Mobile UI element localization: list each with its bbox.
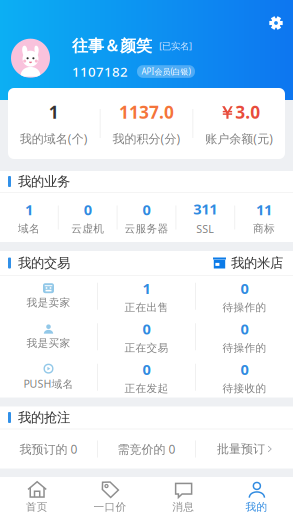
staticText: 账户余额(元) xyxy=(205,131,273,146)
staticText: 云服务器 xyxy=(124,222,168,235)
staticText: 域名 xyxy=(18,222,40,235)
button[interactable]: 我是买家 xyxy=(0,324,97,350)
button[interactable]: 0 xyxy=(98,359,195,395)
staticText: 0 xyxy=(142,200,150,219)
staticText: 1 xyxy=(49,100,59,123)
button[interactable]: 一口价 xyxy=(73,477,146,517)
staticText: 我的米店 xyxy=(231,255,283,271)
button[interactable]: 11 xyxy=(235,200,293,235)
staticText: 待操作的 xyxy=(222,341,266,354)
button[interactable]: 0 xyxy=(196,278,293,314)
button[interactable]: 我的 xyxy=(220,477,293,517)
button[interactable]: 0 xyxy=(59,200,117,235)
button[interactable]: 0 xyxy=(118,200,175,235)
staticText: API会员(白银) xyxy=(141,66,190,77)
staticText: 正在发起 xyxy=(124,382,168,395)
button[interactable]: 0 xyxy=(196,319,293,355)
button[interactable]: 我是卖家 xyxy=(0,283,97,309)
button[interactable]: 首页 xyxy=(0,477,73,517)
button[interactable]: Settings xyxy=(262,9,290,37)
staticText: 需竞价的 0 xyxy=(117,441,175,457)
staticText: 往事＆颜笑 xyxy=(72,36,152,56)
staticText: 0 xyxy=(142,319,150,338)
staticText: 正在出售 xyxy=(124,301,168,314)
button[interactable]: 1 xyxy=(98,278,195,314)
staticText: 我的业务 xyxy=(18,173,70,190)
staticText: 一口价 xyxy=(93,500,126,513)
button[interactable]: 批量预订 xyxy=(196,442,293,456)
staticText: 1 xyxy=(25,200,33,219)
staticText: 待接收的 xyxy=(222,382,266,395)
button[interactable]: 0 xyxy=(98,319,195,355)
staticText: 0 xyxy=(84,200,92,219)
button[interactable]: 1 xyxy=(0,200,58,235)
button[interactable]: 1137.0 xyxy=(101,100,192,146)
staticText: 1137.0 xyxy=(119,100,174,123)
button[interactable]: PUSH域名 xyxy=(0,364,97,391)
staticText: 我是卖家 xyxy=(26,296,70,309)
staticText: 商标 xyxy=(253,222,275,235)
staticText: 1107182 xyxy=(72,63,128,80)
button[interactable]: 需竞价的 0 xyxy=(98,441,195,457)
staticText: 0 xyxy=(240,278,248,298)
button[interactable]: 1 xyxy=(8,100,100,146)
staticText: 11 xyxy=(256,200,272,219)
staticText: 我的抢注 xyxy=(18,409,70,426)
staticText: 0 xyxy=(240,359,248,379)
staticText: 消息 xyxy=(172,500,194,513)
staticText: 0 xyxy=(240,319,248,338)
staticText: 正在交易 xyxy=(124,341,168,354)
button[interactable]: 我预订的 0 xyxy=(0,441,97,457)
staticText: 我的积分(分) xyxy=(112,130,180,146)
button[interactable]: 消息 xyxy=(146,477,220,517)
button[interactable]: 0 xyxy=(196,359,293,395)
staticText: 我预订的 0 xyxy=(19,441,77,457)
button[interactable]: 311 xyxy=(176,199,234,236)
staticText: 批量预订 xyxy=(217,442,265,456)
staticText: 我的 xyxy=(245,500,267,513)
staticText: [已实名] xyxy=(159,40,192,52)
button[interactable]: ￥3.0 xyxy=(193,100,285,146)
staticText: PUSH域名 xyxy=(23,377,73,391)
staticText: SSL xyxy=(196,222,214,236)
staticText: ￥3.0 xyxy=(218,100,260,124)
staticText: 311 xyxy=(193,199,217,219)
staticText: 云虚机 xyxy=(71,222,104,235)
staticText: 我是买家 xyxy=(26,337,70,350)
staticText: 首页 xyxy=(26,500,48,513)
staticText: 我的交易 xyxy=(18,255,70,271)
staticText: 1 xyxy=(142,278,150,298)
button[interactable]: 我的米店 xyxy=(213,255,283,271)
staticText: 我的域名(个) xyxy=(20,130,88,146)
staticText: 0 xyxy=(142,359,150,379)
staticText: 待操作的 xyxy=(222,301,266,314)
